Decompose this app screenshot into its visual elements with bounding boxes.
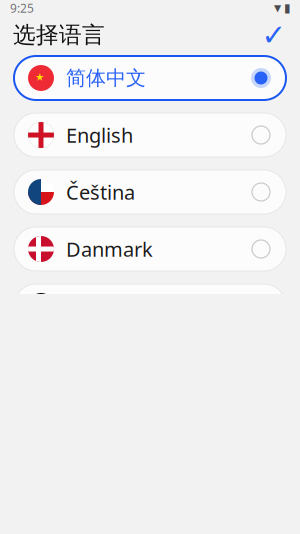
button[interactable]: ★ — [14, 56, 286, 100]
staticText: Čeština — [66, 179, 135, 205]
staticText: 选择语言 — [13, 21, 105, 49]
button[interactable]: Confirm — [257, 18, 291, 52]
staticText: English — [66, 122, 133, 148]
staticText: 9:25 — [10, 0, 34, 16]
staticText: 简体中文 — [66, 66, 146, 90]
button[interactable]: Deutsche — [14, 284, 286, 328]
staticText: ▮ — [284, 1, 291, 15]
button[interactable]: Danmark — [14, 227, 286, 271]
staticText: ▼ — [274, 3, 281, 13]
staticText: Danmark — [66, 236, 153, 262]
staticText: ★ — [35, 71, 45, 83]
button[interactable]: English — [14, 113, 286, 157]
staticText: ✓ — [261, 18, 286, 52]
button[interactable]: Čeština — [14, 170, 286, 214]
